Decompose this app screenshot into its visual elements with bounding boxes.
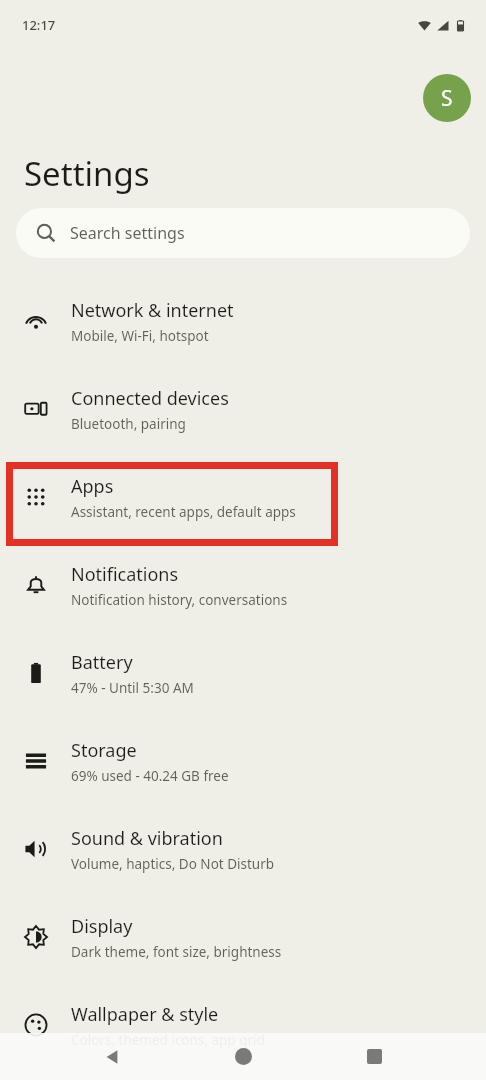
button[interactable]: Connected devices [0,365,486,453]
staticText: 12:17 [22,16,56,34]
button[interactable]: Display [0,893,486,981]
staticText: Notifications [71,562,179,587]
staticText: Battery [71,650,133,675]
button[interactable]: Back [89,1033,137,1080]
button[interactable]: Apps [0,453,486,541]
staticText: Display [71,914,133,939]
staticText: 69% used - 40.24 GB free [71,767,229,785]
staticText: Volume, haptics, Do Not Disturb [71,855,275,873]
staticText: Dark theme, font size, brightness [71,943,282,961]
staticText: Sound & vibration [71,826,223,851]
staticText: Notification history, conversations [71,591,288,609]
staticText: S [441,84,453,113]
button[interactable]: Notifications [0,541,486,629]
staticText: Settings [24,151,150,196]
button[interactable]: Sound & vibration [0,805,486,893]
button[interactable]: Recent apps [350,1033,398,1080]
button[interactable]: Account [423,74,471,122]
staticText: Assistant, recent apps, default apps [71,503,296,521]
button[interactable]: Home [219,1033,267,1080]
staticText: Search settings [70,222,185,244]
staticText: Wallpaper & style [71,1002,219,1027]
button[interactable]: Storage [0,717,486,805]
staticText: Mobile, Wi-Fi, hotspot [71,327,209,345]
button[interactable]: Battery [0,629,486,717]
button[interactable]: Network & internet [0,277,486,365]
staticText: Connected devices [71,386,229,411]
staticText: 47% - Until 5:30 AM [71,679,194,697]
staticText: Network & internet [71,298,234,323]
staticText: Colors, themed icons, app grid [71,1031,265,1049]
button[interactable]: Search settings [16,208,470,258]
button[interactable]: Wallpaper & style [0,981,486,1069]
staticText: Apps [71,474,114,499]
staticText: Bluetooth, pairing [71,415,186,433]
staticText: Storage [71,738,137,763]
